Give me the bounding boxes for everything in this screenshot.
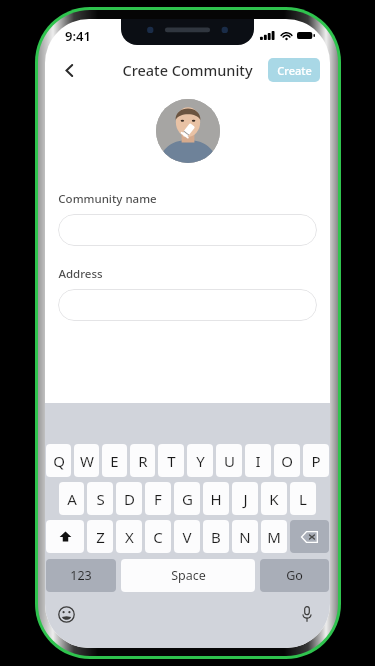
staticText: Create Community (122, 60, 253, 80)
button[interactable]: K (261, 482, 287, 515)
staticText: I (255, 451, 261, 471)
staticText: Q (53, 451, 65, 471)
button[interactable]: A (59, 482, 84, 515)
button[interactable]: Emoji (53, 601, 79, 627)
button[interactable]: P (303, 444, 329, 477)
staticText: D (124, 489, 135, 509)
staticText: B (211, 527, 221, 547)
button[interactable] (58, 214, 317, 246)
staticText: Space (171, 567, 206, 584)
button[interactable]: Y (187, 444, 213, 477)
button[interactable]: X (116, 520, 142, 553)
button[interactable]: C (145, 520, 171, 553)
button[interactable]: Change community photo (156, 99, 220, 163)
button[interactable]: T (158, 444, 184, 477)
button[interactable]: G (174, 482, 200, 515)
staticText: F (154, 489, 162, 509)
button[interactable]: B (203, 520, 229, 553)
staticText: Address (58, 266, 103, 282)
button[interactable]: Z (87, 520, 113, 553)
staticText: S (96, 489, 105, 509)
staticText: T (167, 451, 176, 471)
staticText: Community name (58, 191, 157, 207)
staticText: C (153, 527, 163, 547)
button[interactable]: N (232, 520, 258, 553)
button[interactable]: Q (46, 444, 71, 477)
staticText: O (281, 451, 293, 471)
staticText: 9:41 (65, 27, 91, 45)
button[interactable]: Create (268, 58, 320, 82)
staticText: E (110, 451, 119, 471)
staticText: M (267, 527, 281, 547)
button[interactable]: Go (260, 559, 329, 592)
button[interactable]: L (290, 482, 316, 515)
staticText: R (138, 451, 148, 471)
button[interactable]: Back (51, 52, 87, 88)
staticText: Create (277, 63, 312, 78)
staticText: X (125, 527, 134, 547)
staticText: P (311, 451, 321, 471)
staticText: H (210, 489, 222, 509)
button[interactable]: W (74, 444, 99, 477)
staticText: K (269, 489, 279, 509)
button[interactable]: D (116, 482, 142, 515)
staticText: Go (286, 567, 303, 584)
button[interactable] (58, 289, 317, 321)
button[interactable]: 123 (46, 559, 116, 592)
staticText: U (224, 451, 235, 471)
button[interactable]: O (274, 444, 300, 477)
button[interactable]: J (232, 482, 258, 515)
button[interactable]: R (130, 444, 155, 477)
button[interactable]: Space (121, 559, 255, 592)
button[interactable]: F (145, 482, 171, 515)
staticText: Z (96, 527, 105, 547)
button[interactable]: M (261, 520, 287, 553)
staticText: Y (196, 451, 205, 471)
button[interactable]: Shift (46, 520, 84, 553)
button[interactable]: U (216, 444, 242, 477)
staticText: W (80, 451, 94, 471)
button[interactable]: Backspace (290, 520, 329, 553)
button[interactable]: I (245, 444, 271, 477)
staticText: N (239, 527, 251, 547)
button[interactable]: S (87, 482, 113, 515)
staticText: V (182, 527, 192, 547)
staticText: 123 (70, 567, 92, 584)
button[interactable]: Voice input (294, 601, 320, 627)
button[interactable]: H (203, 482, 229, 515)
staticText: G (182, 489, 193, 509)
button[interactable]: E (102, 444, 127, 477)
button[interactable]: V (174, 520, 200, 553)
staticText: L (299, 489, 307, 509)
staticText: J (243, 489, 248, 509)
staticText: A (67, 489, 77, 509)
